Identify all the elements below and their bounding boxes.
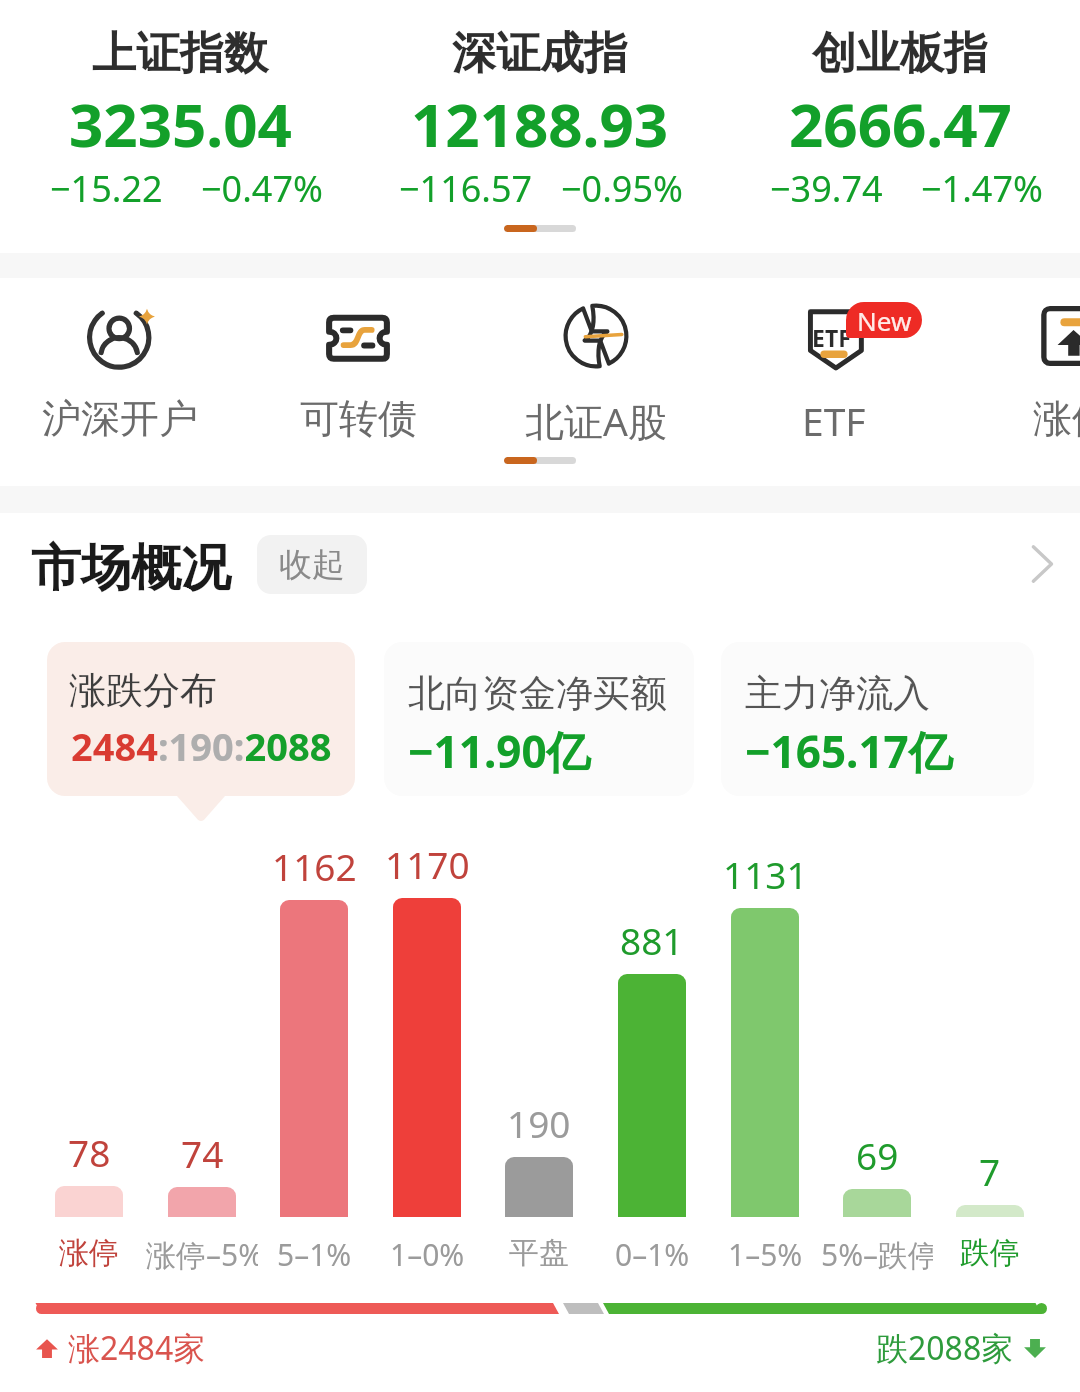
button[interactable]: 沪深开户 (1, 278, 239, 486)
staticText: 190 (507, 1098, 571, 1148)
staticText: New (857, 303, 912, 338)
staticText: 881 (620, 915, 684, 965)
button[interactable]: 1131 (709, 818, 821, 1217)
staticText: 涨停–5% (146, 1234, 258, 1275)
button[interactable]: 74 (146, 1097, 258, 1217)
staticText: 上证指数 (92, 26, 268, 81)
staticText: 涨停 (1033, 394, 1080, 443)
button[interactable]: 涨停 (953, 278, 1080, 486)
staticText: 2484:190:2088 (71, 720, 332, 772)
button[interactable]: 881 (596, 884, 708, 1217)
staticText: ETF (802, 394, 866, 447)
button[interactable]: ETF (715, 278, 953, 486)
staticText: 5–1% (277, 1234, 352, 1275)
staticText: 深证成指 (452, 26, 628, 81)
staticText: −1.47% (921, 164, 1043, 213)
button[interactable]: 上证指数 (0, 0, 360, 215)
staticText: 1–0% (390, 1234, 465, 1275)
staticText: −15.22 (50, 164, 163, 213)
staticText: −11.90亿 (408, 721, 591, 781)
staticText: 3235.04 (69, 83, 292, 165)
staticText: 主力净流入 (745, 670, 930, 717)
staticText: 涨停 (59, 1234, 119, 1272)
staticText: 78 (68, 1127, 111, 1177)
staticText: 平盘 (509, 1234, 569, 1272)
staticText: 1162 (272, 841, 357, 891)
staticText: 市场概况 (31, 537, 231, 600)
button[interactable]: 1170 (371, 808, 483, 1217)
button[interactable]: 主力净流入 (721, 642, 1034, 796)
button[interactable]: 78 (33, 1096, 145, 1217)
staticText: 74 (181, 1128, 224, 1178)
button[interactable]: 北证A股 (477, 278, 715, 486)
button[interactable]: 1162 (258, 810, 370, 1217)
staticText: 北向资金净买额 (408, 670, 667, 717)
button[interactable]: 展开详情 (1012, 538, 1064, 590)
staticText: 1170 (385, 839, 470, 889)
staticText: 可转债 (300, 394, 417, 443)
staticText: 2666.47 (789, 83, 1012, 165)
staticText: −39.74 (770, 164, 883, 213)
staticText: 涨2484家 (68, 1326, 206, 1370)
button[interactable]: 7 (934, 1115, 1046, 1217)
staticText: 12188.93 (411, 83, 669, 165)
button[interactable]: 创业板指 (720, 0, 1080, 215)
staticText: 1131 (723, 849, 808, 899)
staticText: −165.17亿 (745, 721, 953, 781)
staticText: ETF (812, 322, 851, 353)
staticText: 5%–跌停 (821, 1234, 933, 1275)
staticText: 1–5% (728, 1234, 803, 1275)
staticText: 跌2088家 (876, 1326, 1014, 1370)
staticText: 跌停 (960, 1234, 1020, 1272)
staticText: −0.47% (201, 164, 323, 213)
staticText: −0.95% (561, 164, 683, 213)
button[interactable]: 北向资金净买额 (384, 642, 694, 796)
staticText: 创业板指 (812, 26, 988, 81)
staticText: 69 (856, 1130, 899, 1180)
staticText: 7 (979, 1146, 1001, 1196)
button[interactable]: 69 (821, 1099, 933, 1217)
staticText: 北证A股 (525, 394, 667, 447)
staticText: 涨跌分布 (69, 667, 217, 714)
button[interactable]: 深证成指 (360, 0, 720, 215)
button[interactable]: 涨跌分布 (47, 642, 355, 796)
button[interactable]: 可转债 (239, 278, 477, 486)
button[interactable]: 收起 (257, 535, 367, 594)
staticText: 沪深开户 (42, 394, 198, 443)
staticText: −116.57 (399, 164, 533, 213)
staticText: 0–1% (615, 1234, 690, 1275)
staticText: 收起 (279, 544, 345, 586)
button[interactable]: 190 (483, 1067, 595, 1217)
